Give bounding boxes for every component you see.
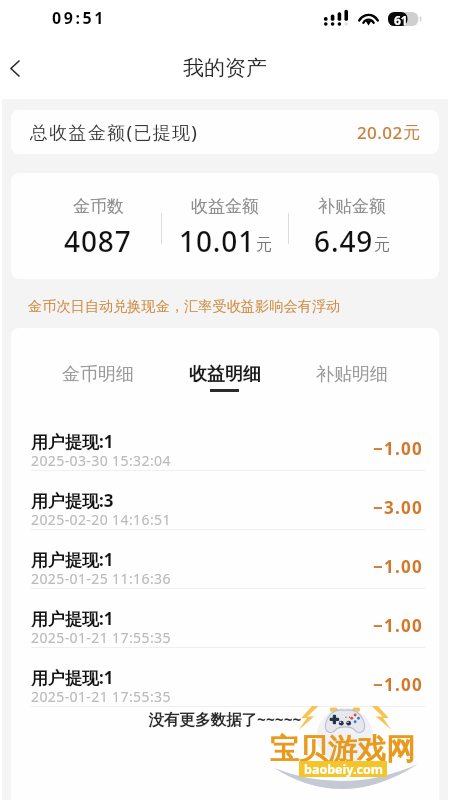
staticText: 用户提现:1 xyxy=(31,430,114,453)
staticText: 补贴金额 xyxy=(318,196,386,217)
staticText: 2025-01-21 17:55:35 xyxy=(31,687,171,706)
staticText: −1.00 xyxy=(373,437,423,460)
button[interactable]: Back xyxy=(1,44,27,92)
staticText: 2025-03-30 15:32:04 xyxy=(31,451,171,470)
staticText: 20.02 xyxy=(357,121,403,144)
staticText: 用户提现:1 xyxy=(31,607,114,630)
staticText: 补贴明细 xyxy=(316,363,388,386)
staticText: 10.01 xyxy=(179,222,256,260)
staticText: 元 xyxy=(256,235,272,255)
button[interactable]: 用户提现:1 xyxy=(11,648,439,706)
staticText: −1.00 xyxy=(373,555,423,578)
staticText: baobeiy.com xyxy=(304,761,383,777)
staticText: 金币次日自动兑换现金，汇率受收益影响会有浮动 xyxy=(28,297,450,315)
staticText: 用户提现:3 xyxy=(31,489,114,512)
staticText: 没有更多数据了~~~~~ xyxy=(11,708,439,729)
button[interactable]: 用户提现:3 xyxy=(11,471,439,529)
staticText: 4087 xyxy=(64,222,132,260)
staticText: 09:51 xyxy=(52,7,107,29)
staticText: 金币数 xyxy=(73,196,124,217)
staticText: 2025-01-21 17:55:35 xyxy=(31,628,171,647)
staticText: 61 xyxy=(394,12,408,26)
staticText: 收益金额 xyxy=(191,196,259,217)
button[interactable]: 收益明细 xyxy=(161,328,288,412)
button[interactable]: 用户提现:1 xyxy=(11,412,439,470)
staticText: 总收益金额(已提现) xyxy=(30,120,199,145)
staticText: −1.00 xyxy=(373,614,423,637)
button[interactable]: 补贴明细 xyxy=(288,328,415,412)
staticText: 元 xyxy=(403,122,420,143)
staticText: 2025-01-25 11:16:36 xyxy=(31,569,171,588)
button[interactable]: 用户提现:1 xyxy=(11,530,439,588)
staticText: −3.00 xyxy=(373,496,423,519)
staticText: 2025-02-20 14:16:51 xyxy=(31,510,171,529)
button[interactable]: 总收益金额(已提现) xyxy=(11,110,439,154)
staticText: −1.00 xyxy=(373,673,423,696)
button[interactable]: 用户提现:1 xyxy=(11,589,439,647)
staticText: 宝贝游戏网 xyxy=(270,731,415,768)
staticText: 金币明细 xyxy=(62,363,134,386)
staticText: 用户提现:1 xyxy=(31,548,114,571)
staticText: 6.49 xyxy=(314,222,374,260)
button[interactable]: 收益金额 xyxy=(162,196,288,260)
staticText: 元 xyxy=(374,235,390,255)
button[interactable]: 金币明细 xyxy=(35,328,161,412)
button[interactable]: 金币数 xyxy=(35,196,161,260)
staticText: 用户提现:1 xyxy=(31,666,114,689)
staticText: 收益明细 xyxy=(189,363,261,386)
button[interactable]: 补贴金额 xyxy=(289,196,415,260)
staticText: 我的资产 xyxy=(183,55,267,81)
